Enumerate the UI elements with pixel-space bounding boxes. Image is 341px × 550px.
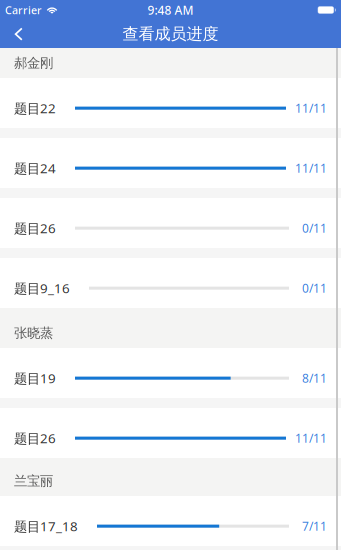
- staticText: 题目9_16: [14, 279, 70, 297]
- button[interactable]: 题目26: [0, 408, 341, 458]
- staticText: 题目26: [14, 219, 56, 237]
- staticText: 9:48 AM: [147, 2, 193, 18]
- staticText: 兰宝丽: [14, 473, 53, 489]
- staticText: 题目17_18: [14, 517, 78, 535]
- staticText: 郝金刚: [14, 55, 53, 71]
- button[interactable]: 题目22: [0, 78, 341, 128]
- staticText: 11/11: [295, 100, 327, 116]
- staticText: 11/11: [295, 160, 327, 176]
- staticText: 11/11: [295, 430, 327, 446]
- button[interactable]: 题目19: [0, 348, 341, 398]
- staticText: 查看成员进度: [122, 24, 218, 44]
- staticText: Carrier: [5, 3, 42, 17]
- staticText: 题目26: [14, 429, 56, 447]
- staticText: 8/11: [302, 370, 327, 386]
- button[interactable]: 题目24: [0, 138, 341, 188]
- staticText: 0/11: [302, 280, 327, 296]
- button[interactable]: 题目26: [0, 198, 341, 248]
- button[interactable]: 题目9_16: [0, 258, 341, 308]
- button[interactable]: 题目17_18: [0, 496, 341, 546]
- staticText: 0/11: [302, 220, 327, 236]
- staticText: 题目19: [14, 369, 56, 387]
- button[interactable]: Back: [0, 20, 54, 48]
- staticText: 张晓蒸: [14, 325, 53, 341]
- staticText: 7/11: [302, 518, 327, 534]
- staticText: 题目22: [14, 99, 56, 117]
- staticText: 题目24: [14, 159, 56, 177]
